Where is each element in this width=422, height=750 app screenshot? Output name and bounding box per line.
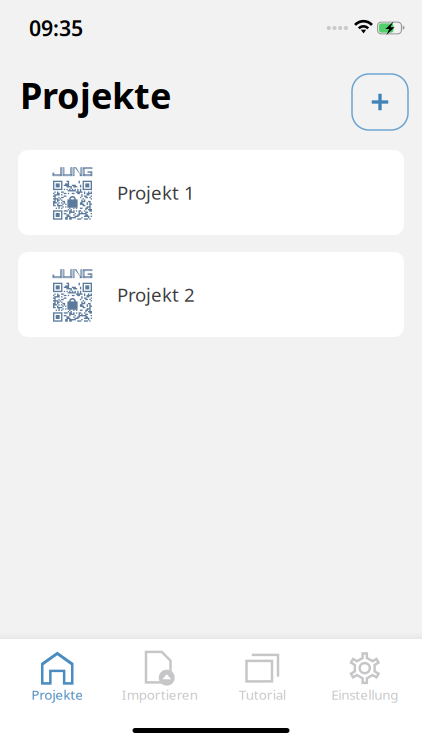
staticText: Importieren xyxy=(122,686,198,703)
button[interactable]: Projekt 1 xyxy=(18,150,404,235)
staticText: Projekt 1 xyxy=(117,180,195,205)
staticText: Einstellung xyxy=(331,686,398,703)
button[interactable]: Importieren xyxy=(108,649,211,705)
button[interactable]: Projekt 2 xyxy=(18,252,404,337)
button[interactable]: Projekte xyxy=(6,649,108,705)
staticText: 09:35 xyxy=(29,14,83,42)
button[interactable]: Tutorial xyxy=(211,649,313,705)
staticText: Projekt 2 xyxy=(117,282,195,307)
button[interactable]: Neues Projekt xyxy=(352,66,408,130)
staticText: Projekte xyxy=(31,686,83,703)
staticText: Projekte xyxy=(20,71,171,119)
staticText: Tutorial xyxy=(239,686,286,703)
button[interactable]: Einstellung xyxy=(313,649,416,705)
